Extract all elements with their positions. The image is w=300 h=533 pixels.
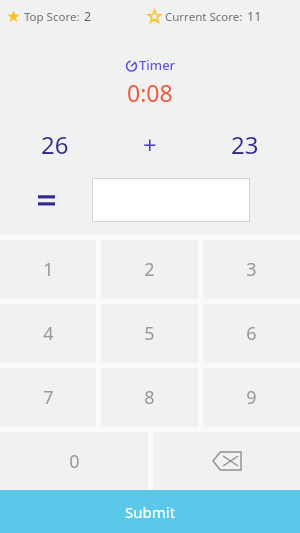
staticText: 23 [231, 128, 259, 161]
staticText: Submit [125, 502, 176, 522]
staticText: 1 [43, 257, 54, 282]
button[interactable]: Top Score: [7, 8, 92, 25]
button[interactable]: 7 [0, 368, 96, 427]
button[interactable]: 0 [0, 432, 148, 490]
button[interactable]: 8 [101, 368, 198, 427]
button[interactable]: 5 [101, 304, 198, 363]
staticText: 2 [84, 8, 92, 25]
staticText: 0 [69, 449, 80, 474]
staticText: 6 [246, 321, 257, 346]
staticText: Current Score: [165, 9, 243, 25]
staticText: 9 [246, 385, 257, 410]
button[interactable]: 1 [0, 240, 96, 299]
staticText: 7 [43, 385, 54, 410]
button[interactable]: 4 [0, 304, 96, 363]
staticText: 5 [144, 321, 155, 346]
staticText: 8 [144, 385, 155, 410]
staticText: 3 [246, 257, 257, 282]
staticText: Top Score: [24, 9, 80, 25]
button[interactable]: Backspace [153, 432, 300, 490]
button[interactable]: Current Score: [148, 8, 262, 25]
staticText: 4 [43, 321, 54, 346]
button[interactable]: 9 [203, 368, 300, 427]
staticText: 0:08 [127, 77, 173, 108]
staticText: 26 [41, 128, 69, 161]
button[interactable]: 6 [203, 304, 300, 363]
staticText: 11 [247, 8, 262, 25]
staticText: + [143, 128, 157, 161]
staticText: Timer [139, 56, 176, 74]
button[interactable]: 2 [101, 240, 198, 299]
staticText: 2 [144, 257, 155, 282]
button[interactable]: Submit [0, 490, 300, 533]
button[interactable]: 3 [203, 240, 300, 299]
button[interactable] [92, 178, 250, 222]
